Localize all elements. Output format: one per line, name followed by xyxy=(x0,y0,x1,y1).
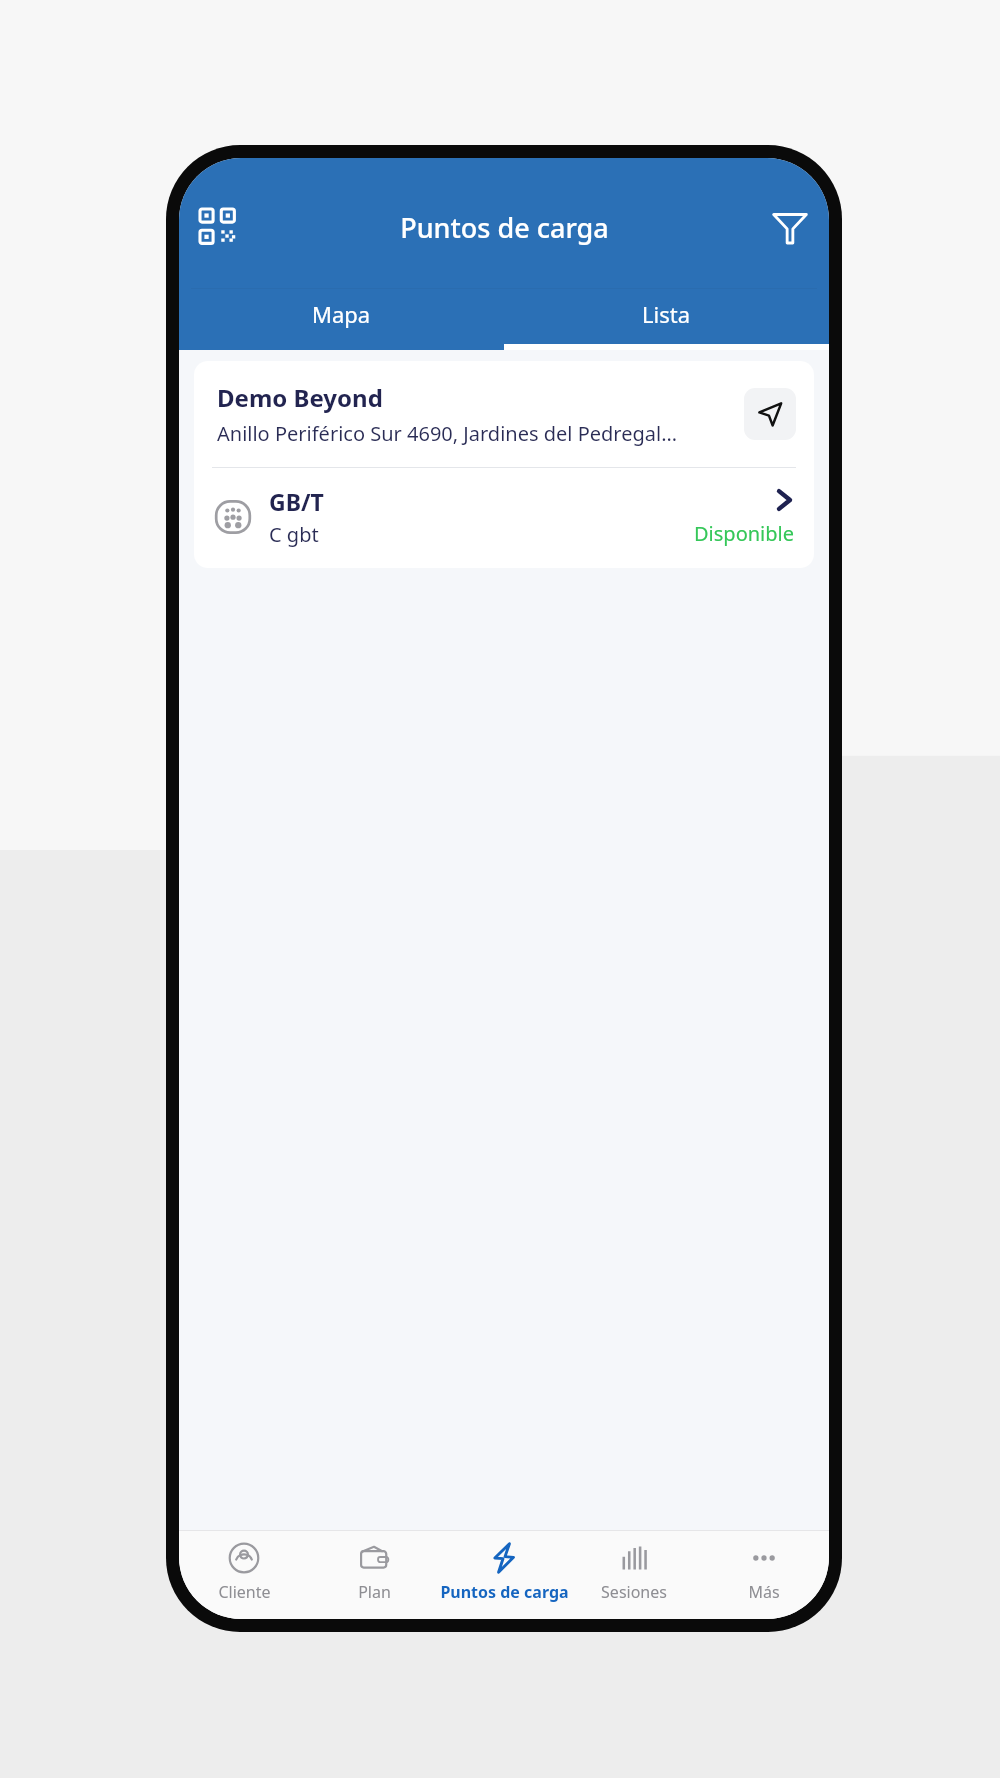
button[interactable]: Navegar xyxy=(744,388,796,440)
staticText: Cliente xyxy=(218,1581,271,1603)
staticText: Demo Beyond xyxy=(217,381,383,414)
button[interactable]: Lista xyxy=(504,288,829,350)
staticText: Anillo Periférico Sur 4690, Jardines del… xyxy=(217,420,677,447)
button[interactable]: Plan xyxy=(309,1531,439,1619)
button[interactable]: Demo Beyond xyxy=(194,361,814,467)
button[interactable]: Mapa xyxy=(179,288,504,350)
staticText: Más xyxy=(748,1581,780,1603)
staticText: Mapa xyxy=(312,299,371,329)
button[interactable]: Puntos de carga xyxy=(439,1531,569,1619)
staticText: Disponible xyxy=(694,520,794,547)
button[interactable]: Escanear código QR xyxy=(187,196,249,258)
button[interactable]: Sesiones xyxy=(569,1531,699,1619)
button[interactable]: GB/T xyxy=(194,468,814,568)
staticText: Plan xyxy=(358,1581,391,1603)
button[interactable]: Más xyxy=(699,1531,829,1619)
button[interactable]: Filtrar xyxy=(759,196,821,258)
staticText: Puntos de carga xyxy=(400,209,609,246)
staticText: Puntos de carga xyxy=(440,1581,569,1603)
staticText: Lista xyxy=(642,299,691,329)
button[interactable]: Cliente xyxy=(179,1531,309,1619)
staticText: GB/T xyxy=(269,486,324,517)
staticText: Sesiones xyxy=(601,1581,667,1603)
staticText: C gbt xyxy=(269,521,319,548)
